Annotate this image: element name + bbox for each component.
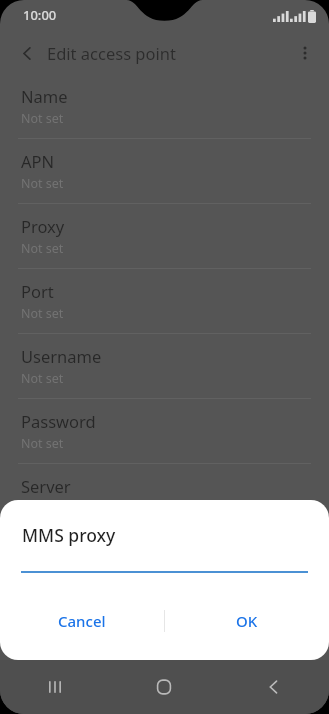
- button[interactable]: Home: [109, 660, 219, 714]
- button[interactable]: More options: [290, 38, 320, 68]
- button[interactable]: APN: [0, 139, 329, 203]
- staticText: Proxy: [21, 215, 65, 237]
- staticText: Not set: [21, 435, 64, 452]
- button[interactable]: Proxy: [0, 204, 329, 268]
- button[interactable]: Back: [219, 660, 329, 714]
- staticText: Not set: [21, 240, 64, 257]
- button[interactable]: MMSC: [0, 529, 329, 593]
- staticText: Not set: [21, 175, 64, 192]
- button[interactable]: Username: [0, 334, 329, 398]
- staticText: 10:00: [23, 6, 57, 24]
- staticText: Edit access point: [47, 42, 176, 64]
- staticText: MMS proxy: [22, 523, 116, 547]
- button[interactable]: OK: [165, 599, 329, 643]
- staticText: Password: [21, 410, 96, 432]
- staticText: Cancel: [58, 611, 106, 631]
- staticText: APN: [21, 150, 55, 172]
- button[interactable]: Recents: [0, 660, 109, 714]
- button[interactable]: Port: [0, 269, 329, 333]
- button[interactable]: Server: [0, 464, 329, 528]
- staticText: Username: [21, 345, 102, 367]
- button[interactable]: Password: [0, 399, 329, 463]
- button[interactable]: Navigate up: [12, 38, 42, 68]
- staticText: Not set: [21, 110, 64, 127]
- button[interactable]: Name: [0, 74, 329, 138]
- staticText: Not set: [21, 305, 64, 322]
- staticText: MMSC: [21, 540, 71, 562]
- staticText: OK: [236, 611, 258, 631]
- button[interactable]: Cancel: [0, 599, 164, 643]
- staticText: Not set: [21, 565, 64, 582]
- staticText: Server: [21, 475, 71, 497]
- staticText: Name: [21, 85, 68, 107]
- staticText: Not set: [21, 370, 64, 387]
- staticText: Port: [21, 280, 54, 302]
